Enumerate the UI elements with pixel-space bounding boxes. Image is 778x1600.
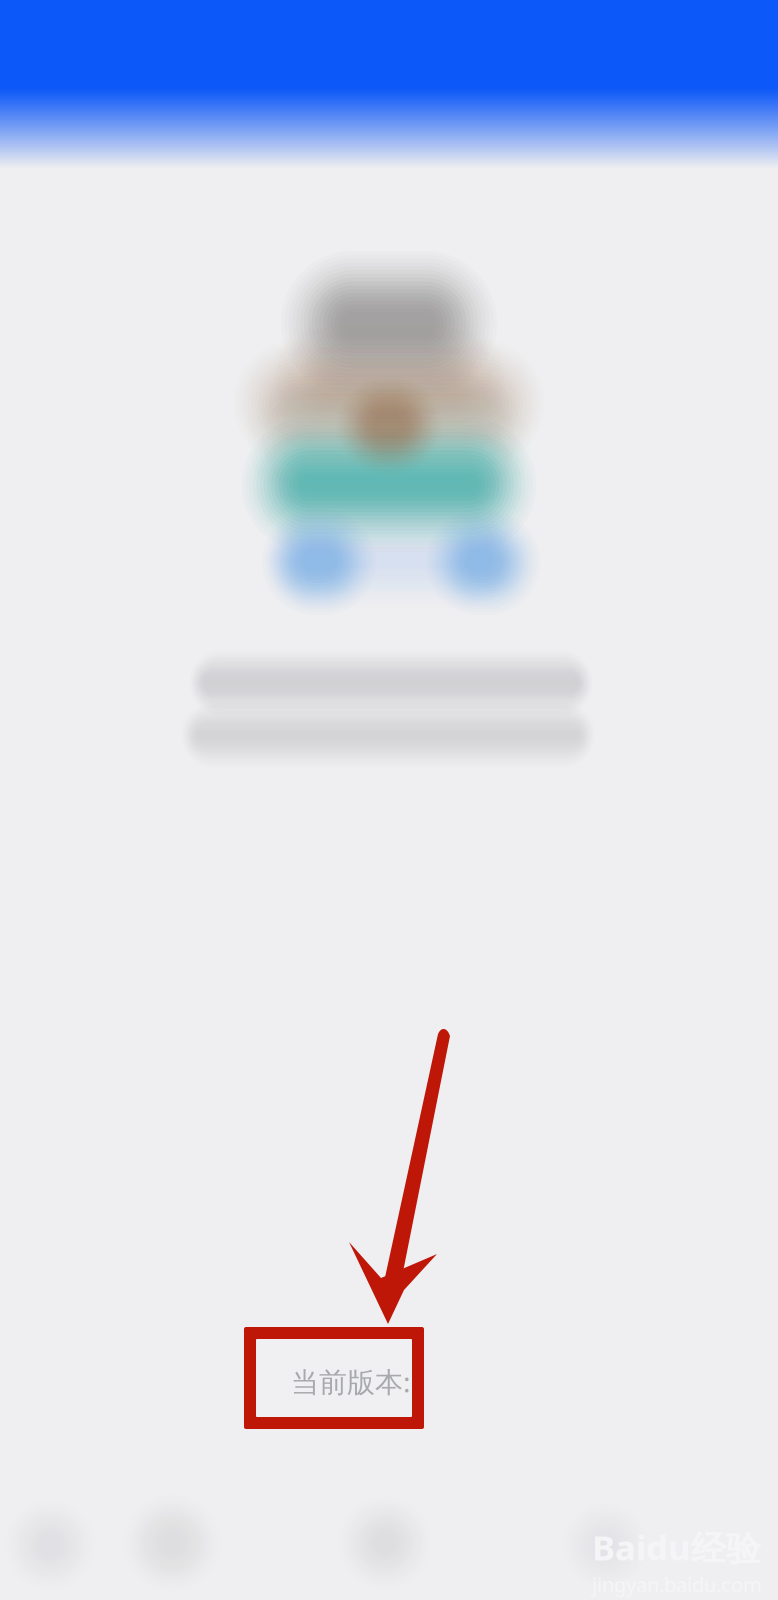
staticText: Baidu经验 [592,1524,761,1570]
button[interactable]: 当前版本: [244,1327,424,1429]
button[interactable]: Profile tab [520,1480,690,1600]
button[interactable]: Home tab [0,1480,135,1600]
button[interactable]: Discover tab [87,1478,257,1600]
button[interactable]: Messages tab [300,1478,470,1600]
staticText: 当前版本: [291,1363,411,1400]
